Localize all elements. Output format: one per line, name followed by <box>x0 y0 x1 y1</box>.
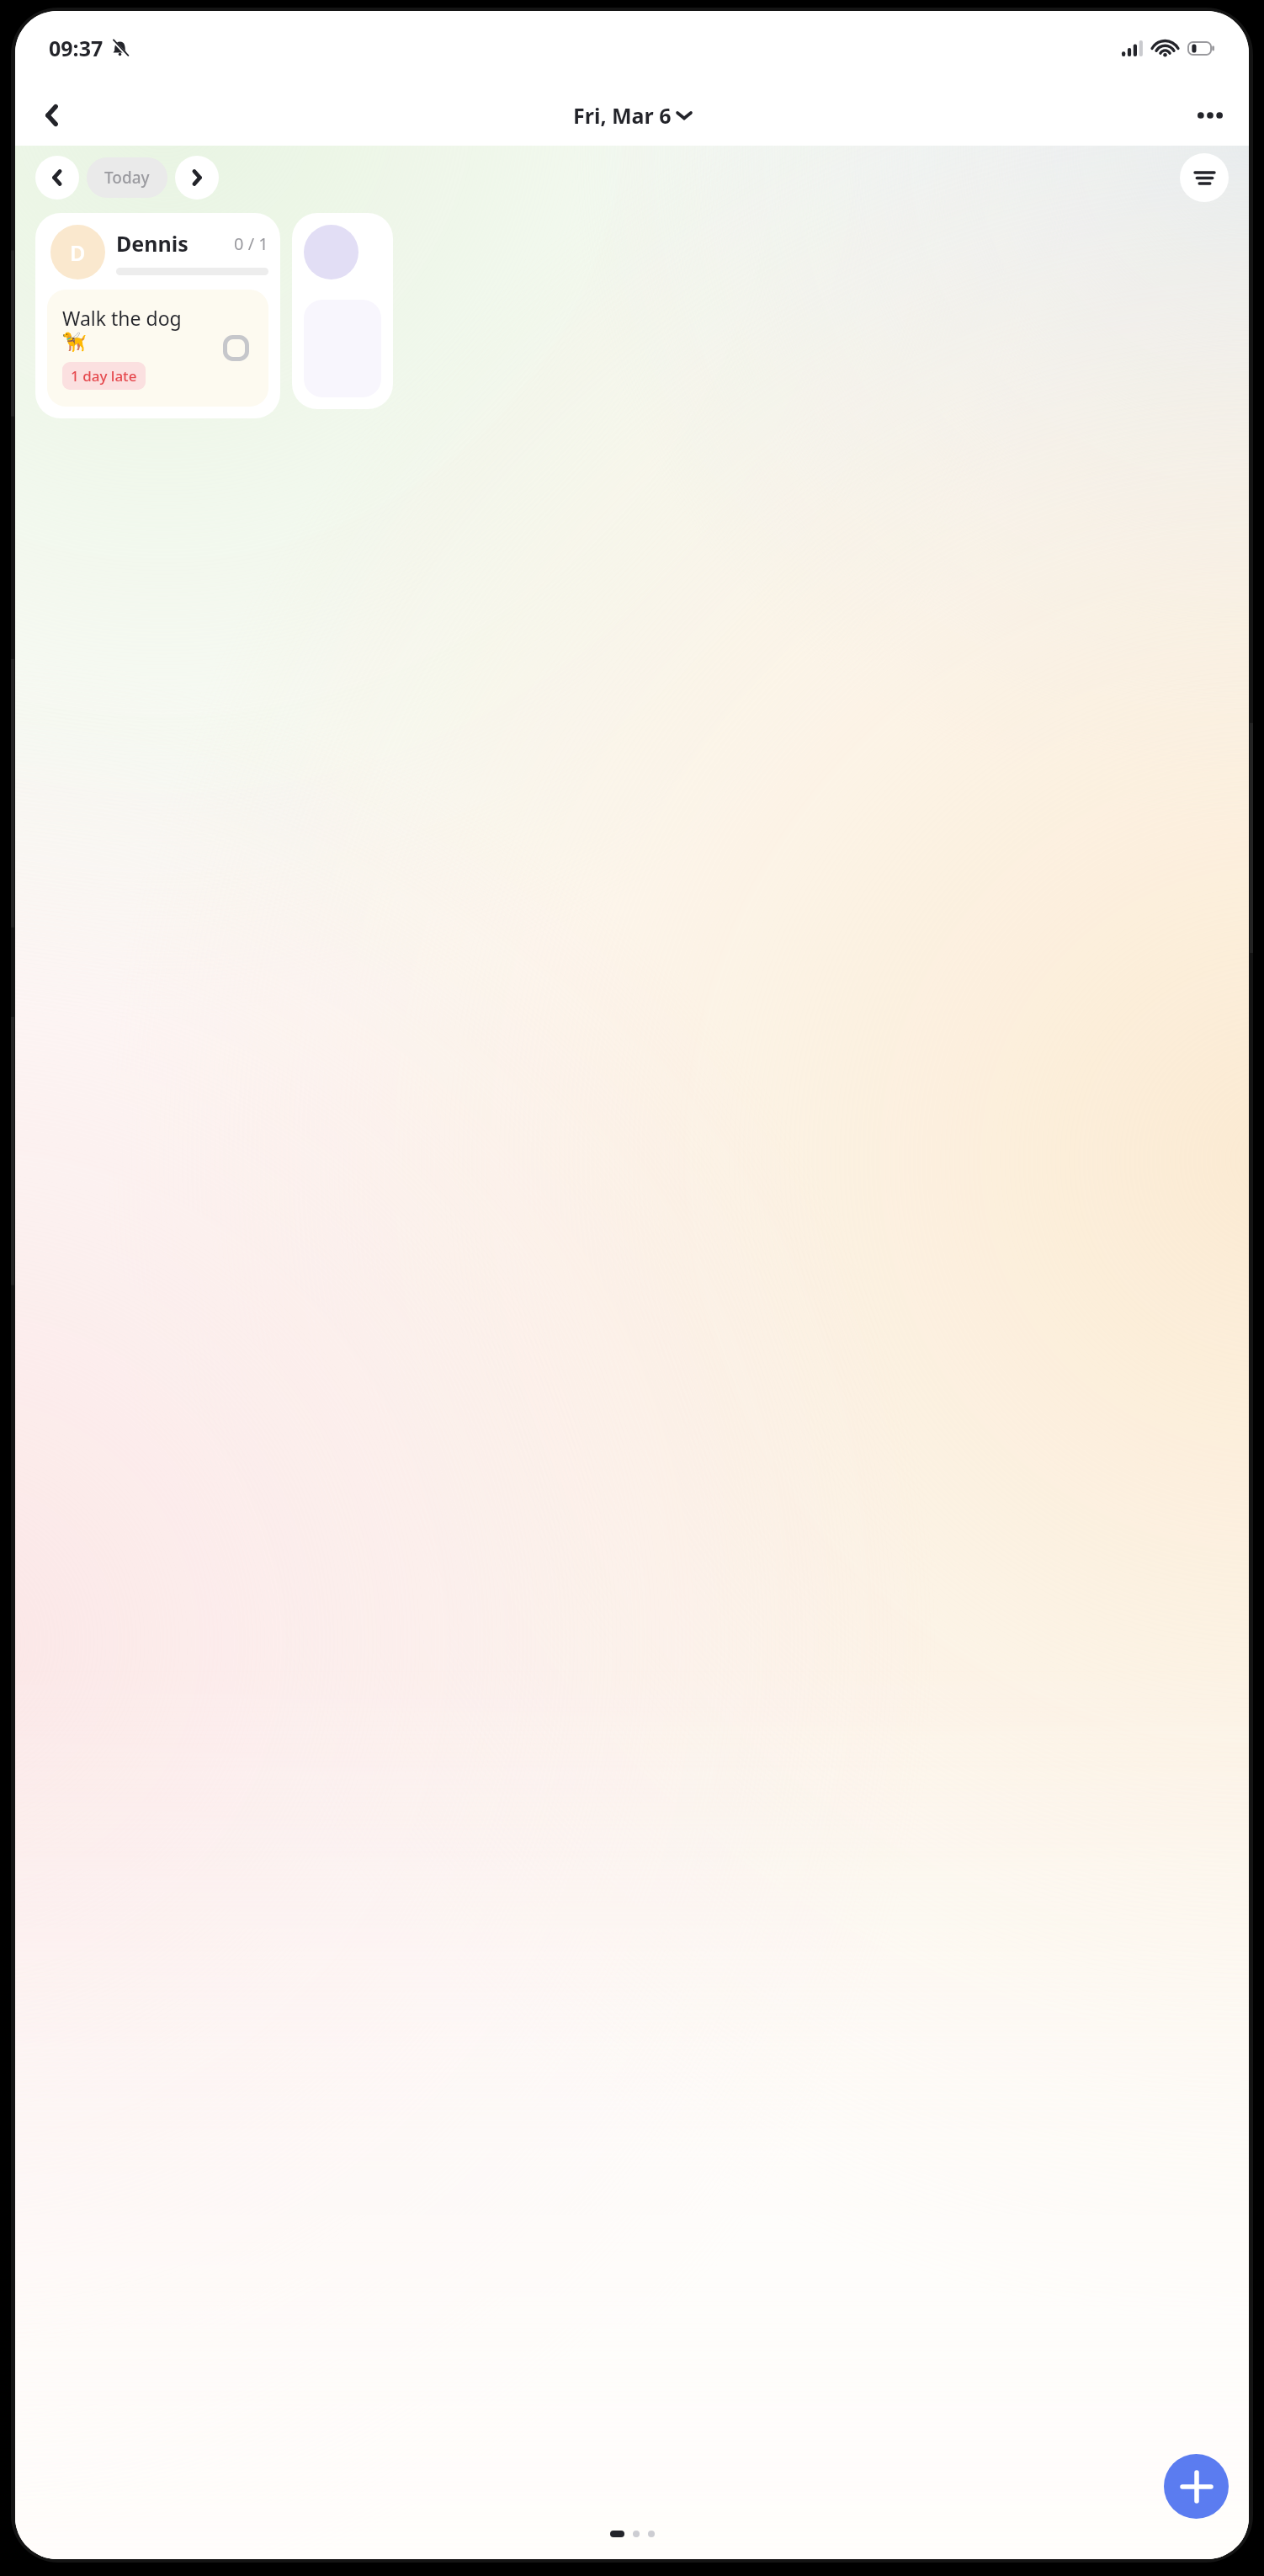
staticText: 0 / 1 <box>234 232 268 255</box>
staticText: 09:37 <box>49 34 104 62</box>
staticText: Today <box>104 167 150 189</box>
button[interactable]: Filter <box>1180 153 1229 202</box>
button[interactable]: Add task <box>1164 2454 1229 2519</box>
button[interactable]: Next day <box>175 156 219 200</box>
button[interactable]: Mark complete <box>216 328 255 367</box>
button[interactable]: D <box>35 213 280 418</box>
staticText: Fri, Mar 6 <box>573 101 672 130</box>
button[interactable] <box>292 213 393 409</box>
button[interactable]: Today <box>87 157 167 198</box>
staticText: D <box>70 238 86 267</box>
button[interactable]: Previous day <box>35 156 79 200</box>
staticText: Dennis <box>116 229 189 258</box>
button[interactable]: Walk the dog 🦮 <box>47 290 268 407</box>
staticText: Walk the dog 🦮 <box>62 305 208 354</box>
button[interactable]: More options <box>1188 93 1232 137</box>
staticText: 1 day late <box>71 366 137 386</box>
button[interactable]: Fri, Mar 6 <box>568 98 696 133</box>
button[interactable]: Back <box>30 93 74 137</box>
